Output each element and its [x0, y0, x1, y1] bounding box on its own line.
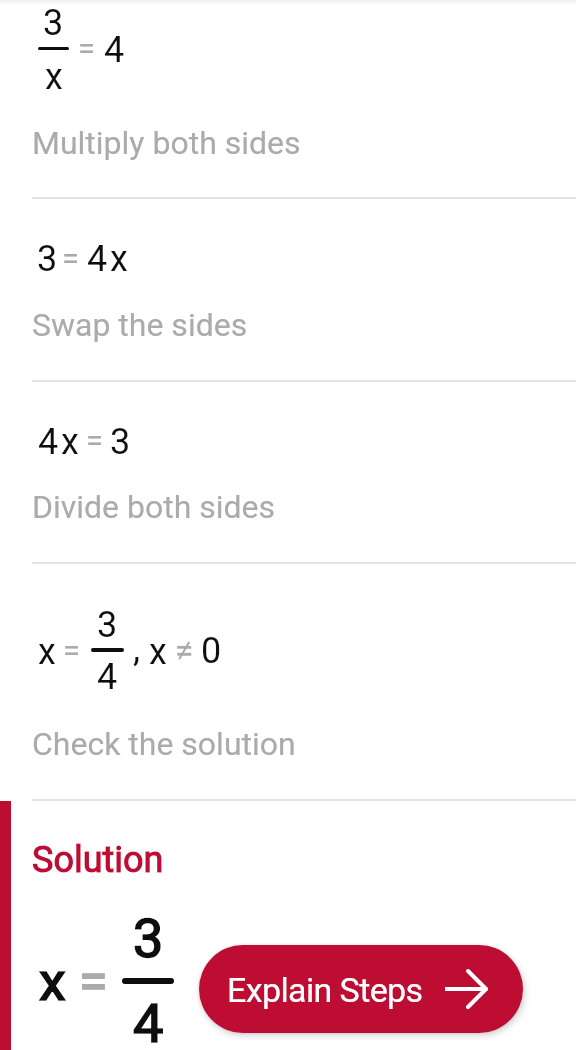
button[interactable]: 3 [0, 195, 576, 380]
staticText: 4 [104, 29, 125, 71]
staticText: , [133, 628, 141, 670]
staticText: x [61, 421, 79, 463]
staticText: 0 [201, 630, 222, 672]
staticText: Explain Steps [227, 970, 423, 1010]
staticText: = [79, 951, 108, 1012]
staticText: 4 [38, 421, 59, 463]
staticText: Solution [32, 839, 164, 881]
button[interactable]: 4 [0, 381, 576, 562]
staticText: x [38, 631, 56, 673]
button[interactable]: 3 [0, 0, 576, 194]
staticText: = [62, 240, 80, 276]
staticText: 3 [133, 907, 164, 970]
staticText: x [45, 56, 63, 98]
other: Explain steps [445, 969, 487, 1009]
staticText: = [86, 422, 104, 458]
staticText: 4 [87, 238, 108, 280]
staticText: x [39, 950, 66, 1013]
button[interactable]: Explain Steps [199, 945, 523, 1033]
staticText: x [149, 631, 167, 673]
staticText: = [78, 30, 96, 66]
staticText: 3 [97, 604, 118, 646]
staticText: Swap the sides [32, 306, 248, 344]
button[interactable]: x [0, 563, 576, 799]
staticText: 3 [110, 421, 131, 463]
staticText: ≠ [175, 630, 194, 670]
staticText: 4 [133, 992, 164, 1050]
staticText: Divide both sides [32, 488, 276, 526]
staticText: Multiply both sides [32, 124, 301, 162]
staticText: 4 [97, 656, 118, 698]
staticText: 3 [37, 238, 58, 280]
staticText: x [110, 238, 128, 280]
staticText: Check the solution [32, 725, 296, 763]
staticText: 3 [43, 2, 64, 44]
staticText: = [63, 632, 81, 668]
